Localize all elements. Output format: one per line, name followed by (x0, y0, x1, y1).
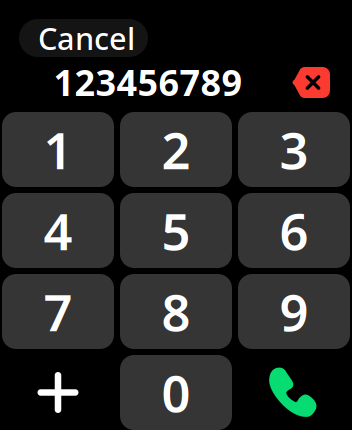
staticText: 1 (43, 116, 72, 183)
button[interactable]: Call (238, 355, 350, 430)
button[interactable]: Cancel (19, 19, 148, 57)
button[interactable]: Plus (2, 355, 114, 430)
staticText: 9 (279, 278, 308, 345)
staticText: 6 (279, 197, 308, 264)
button[interactable]: 8 (120, 274, 232, 349)
staticText: 123456789 (53, 58, 242, 106)
button[interactable]: 6 (238, 193, 350, 268)
staticText: Cancel (38, 18, 135, 58)
button[interactable]: 3 (238, 112, 350, 187)
staticText: 3 (279, 116, 308, 183)
button[interactable]: 7 (2, 274, 114, 349)
staticText: 5 (161, 197, 190, 264)
staticText: 8 (161, 278, 190, 345)
button[interactable]: 5 (120, 193, 232, 268)
button[interactable]: Delete (291, 67, 330, 98)
button[interactable]: 9 (238, 274, 350, 349)
staticText: 0 (161, 359, 190, 426)
staticText: 2 (161, 116, 190, 183)
staticText: 7 (43, 278, 72, 345)
staticText: 4 (43, 197, 72, 264)
button[interactable]: 4 (2, 193, 114, 268)
button[interactable]: 2 (120, 112, 232, 187)
button[interactable]: 1 (2, 112, 114, 187)
button[interactable]: 0 (120, 355, 232, 430)
